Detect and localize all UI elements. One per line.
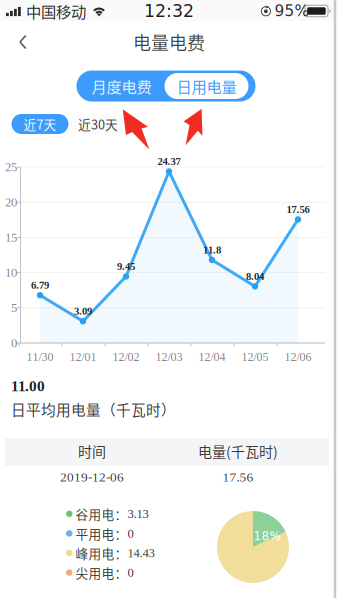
- staticText: 11.00: [11, 377, 45, 394]
- staticText: 25: [5, 160, 17, 174]
- staticText: 谷用电：: [75, 505, 127, 523]
- staticText: 8.04: [246, 270, 264, 282]
- staticText: 11/30: [26, 350, 53, 364]
- staticText: 12/01: [69, 350, 96, 364]
- staticText: 12/03: [155, 350, 182, 364]
- staticText: 时间: [78, 441, 106, 461]
- staticText: 20: [5, 195, 17, 209]
- staticText: 0: [11, 336, 17, 350]
- staticText: 15: [5, 230, 17, 244]
- staticText: 近30天: [78, 115, 118, 133]
- staticText: 9.45: [117, 261, 135, 272]
- staticText: 14.43: [127, 546, 154, 560]
- staticText: 电量(千瓦时): [198, 441, 278, 461]
- staticText: 日用电量: [176, 75, 236, 97]
- staticText: 3.09: [74, 305, 92, 317]
- staticText: 0: [127, 566, 133, 580]
- staticText: 中国移动: [26, 0, 86, 22]
- staticText: 12/02: [112, 350, 139, 364]
- staticText: 12:32: [144, 1, 194, 21]
- staticText: 近7天: [23, 115, 56, 133]
- staticText: 10: [5, 266, 17, 280]
- staticText: 电量电费: [133, 29, 205, 55]
- staticText: 尖用电：: [75, 563, 127, 582]
- staticText: 12/06: [284, 350, 311, 364]
- button[interactable]: 月度电费: [78, 73, 164, 99]
- button[interactable]: 近30天: [69, 114, 126, 134]
- staticText: 12/04: [198, 350, 225, 364]
- staticText: 2019-12-06: [60, 470, 124, 484]
- staticText: 18%: [253, 529, 280, 543]
- staticText: 11.8: [203, 244, 221, 256]
- staticText: 日平均用电量（千瓦时）: [11, 398, 176, 420]
- staticText: 3.13: [127, 507, 148, 521]
- staticText: 5: [11, 301, 17, 315]
- staticText: 平用电：: [75, 524, 127, 542]
- staticText: 6.79: [31, 279, 49, 291]
- staticText: 0: [127, 526, 133, 540]
- staticText: 95%: [274, 2, 309, 20]
- staticText: 月度电费: [91, 75, 151, 97]
- button[interactable]: Back: [3, 26, 43, 58]
- button[interactable]: 日用电量: [164, 73, 248, 99]
- staticText: 17.56: [222, 470, 253, 484]
- staticText: 峰用电：: [75, 544, 127, 562]
- staticText: 17.56: [286, 203, 309, 215]
- staticText: 12/05: [241, 350, 268, 364]
- button[interactable]: 近7天: [11, 114, 68, 134]
- staticText: 24.37: [157, 155, 180, 167]
